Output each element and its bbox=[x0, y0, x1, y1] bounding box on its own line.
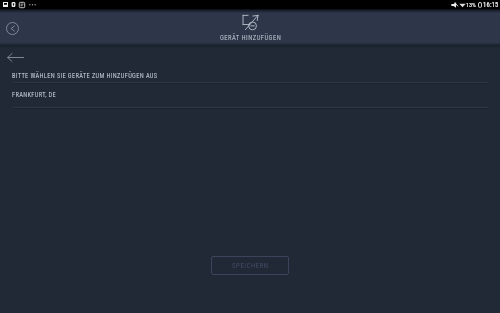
button[interactable]: FRANKFURT, DE bbox=[0, 84, 500, 109]
staticText: GERÄT HINZUFÜGEN bbox=[220, 34, 282, 42]
staticText: 16:15 bbox=[483, 1, 499, 9]
button[interactable]: SPEICHERN bbox=[211, 256, 289, 275]
button[interactable]: Back bbox=[6, 48, 24, 66]
staticText: FRANKFURT, DE bbox=[12, 91, 57, 99]
staticText: 13% bbox=[466, 1, 477, 8]
button[interactable]: BITTE WÄHLEN SIE GERÄTE ZUM HINZUFÜGEN A… bbox=[0, 66, 500, 84]
staticText: SPEICHERN bbox=[232, 262, 269, 270]
staticText: BITTE WÄHLEN SIE GERÄTE ZUM HINZUFÜGEN A… bbox=[12, 72, 158, 80]
button[interactable]: Back bbox=[3, 19, 21, 37]
